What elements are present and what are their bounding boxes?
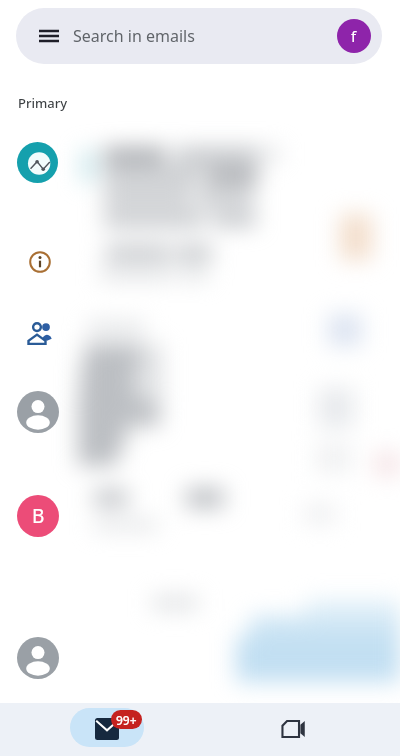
button[interactable]: B	[17, 495, 59, 537]
button[interactable]: Meet	[269, 705, 317, 753]
button[interactable]: Menu	[16, 8, 382, 64]
staticText: f	[351, 26, 357, 46]
staticText: B	[32, 503, 45, 529]
button[interactable]	[17, 391, 59, 433]
staticText: Search in emails	[73, 25, 195, 47]
button[interactable]: Important info	[29, 251, 51, 273]
staticText: Primary	[18, 94, 68, 112]
button[interactable]: Account	[337, 19, 371, 53]
staticText: 99+	[116, 712, 137, 728]
button[interactable]: Group conversation	[27, 322, 52, 345]
button[interactable]: Mail, 99 plus unread	[70, 708, 144, 747]
button[interactable]	[17, 637, 59, 679]
button[interactable]: Google Analytics	[17, 142, 58, 183]
other: Menu	[39, 26, 59, 46]
